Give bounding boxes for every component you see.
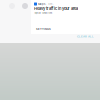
- staticText: Heavy traffic in your area: [34, 6, 78, 11]
- staticText: CLEAR ALL: [77, 35, 94, 38]
- staticText: · 3m ·: [46, 2, 54, 6]
- button[interactable]: Lock: [9, 3, 15, 9]
- button[interactable]: Quick settings: [22, 3, 28, 9]
- staticText: Typical conditions: [34, 11, 52, 14]
- staticText: SETTINGS: [36, 27, 51, 31]
- button[interactable]: CLEAR ALL: [77, 35, 94, 38]
- button[interactable]: SETTINGS: [34, 24, 100, 34]
- staticText: Maps: [38, 2, 45, 6]
